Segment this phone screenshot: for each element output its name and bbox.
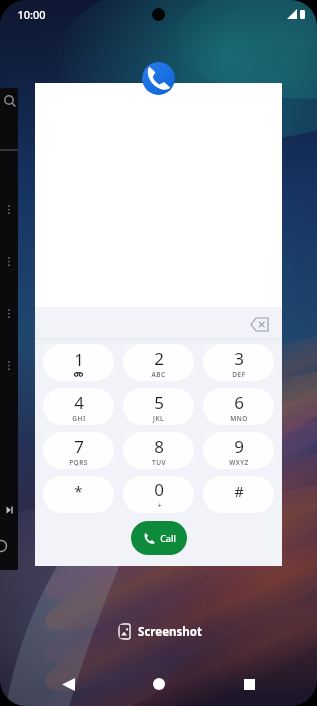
button[interactable]: * bbox=[43, 476, 114, 513]
staticText: 4 bbox=[74, 391, 84, 414]
button[interactable]: 2 bbox=[123, 344, 194, 381]
button[interactable]: Call bbox=[131, 521, 187, 555]
button[interactable]: Backspace bbox=[246, 311, 272, 337]
staticText: Screenshot bbox=[138, 624, 202, 640]
staticText: GHI bbox=[72, 414, 86, 423]
button[interactable]: 1 bbox=[43, 344, 114, 381]
button[interactable]: Back bbox=[46, 662, 90, 706]
button[interactable]: 0 bbox=[123, 476, 194, 513]
staticText: 3 bbox=[234, 347, 244, 370]
staticText: 6 bbox=[234, 391, 244, 414]
button[interactable]: 4 bbox=[43, 388, 114, 425]
staticText: 0 bbox=[154, 478, 164, 501]
staticText: 1 bbox=[74, 348, 84, 371]
button[interactable]: 8 bbox=[123, 432, 194, 469]
button[interactable]: 6 bbox=[203, 388, 274, 425]
staticText: DEF bbox=[232, 370, 246, 379]
staticText: PQRS bbox=[69, 458, 88, 467]
button[interactable]: 7 bbox=[43, 432, 114, 469]
button[interactable]: Home bbox=[137, 662, 181, 706]
button[interactable]: Screenshot bbox=[118, 623, 202, 640]
staticText: 10:00 bbox=[17, 7, 46, 22]
staticText: # bbox=[234, 481, 244, 501]
staticText: * bbox=[74, 481, 83, 501]
button[interactable]: Phone app bbox=[142, 62, 175, 95]
button[interactable]: 9 bbox=[203, 432, 274, 469]
staticText: 8 bbox=[154, 435, 164, 458]
staticText: TUV bbox=[152, 458, 166, 467]
staticText: JKL bbox=[153, 414, 164, 423]
button[interactable]: 3 bbox=[203, 344, 274, 381]
staticText: 2 bbox=[154, 347, 164, 370]
staticText: ABC bbox=[151, 370, 166, 379]
button[interactable]: 5 bbox=[123, 388, 194, 425]
staticText: 7 bbox=[74, 435, 84, 458]
staticText: 9 bbox=[234, 435, 244, 458]
button[interactable]: Recent apps bbox=[227, 662, 271, 706]
staticText: MNO bbox=[230, 414, 248, 423]
staticText: WXYZ bbox=[229, 458, 249, 467]
button[interactable]: # bbox=[203, 476, 274, 513]
staticText: 5 bbox=[154, 391, 164, 414]
staticText: + bbox=[157, 501, 162, 511]
staticText: Call bbox=[160, 532, 176, 544]
